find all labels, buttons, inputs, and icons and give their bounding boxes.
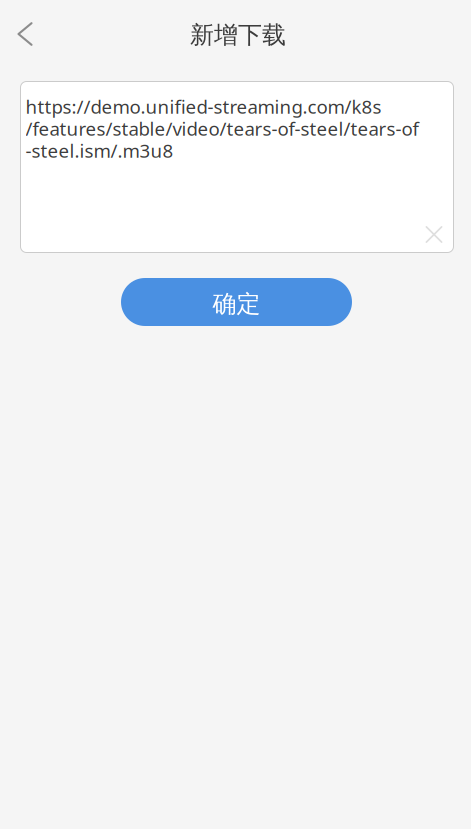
button[interactable]: Download URL xyxy=(20,81,453,252)
staticText: 新增下载 xyxy=(190,20,286,50)
staticText: -steel.ism/.m3u8 xyxy=(25,138,173,163)
button[interactable]: Back xyxy=(3,12,47,56)
button[interactable]: 确定 xyxy=(121,278,352,326)
button[interactable]: Clear text xyxy=(416,216,452,252)
staticText: /features/stable/video/tears-of-steel/te… xyxy=(25,116,418,141)
staticText: https://demo.unified-streaming.com/k8s xyxy=(25,94,381,119)
staticText: 确定 xyxy=(212,289,260,319)
